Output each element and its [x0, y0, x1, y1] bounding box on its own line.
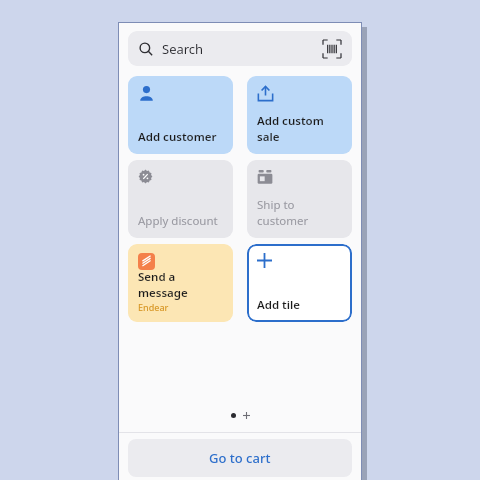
- button[interactable]: Add customer: [128, 76, 233, 154]
- staticText: Search: [162, 40, 204, 58]
- button[interactable]: Ship to customer: [247, 160, 352, 238]
- staticText: Ship to customer: [257, 197, 342, 229]
- staticText: Endear: [138, 301, 169, 313]
- button[interactable]: Send a message: [128, 244, 233, 322]
- button[interactable]: Scan barcode: [323, 40, 341, 58]
- button[interactable]: Search: [128, 31, 352, 66]
- staticText: Add custom sale: [257, 113, 342, 145]
- staticText: Send a message: [138, 269, 223, 301]
- button[interactable]: Add custom sale: [247, 76, 352, 154]
- staticText: Go to cart: [209, 449, 271, 467]
- button[interactable]: Apply discount: [128, 160, 233, 238]
- button[interactable]: Go to cart: [128, 439, 352, 477]
- staticText: Add tile: [257, 297, 301, 313]
- button[interactable]: Add tile: [247, 244, 352, 322]
- staticText: Add customer: [138, 129, 217, 145]
- staticText: Apply discount: [138, 213, 218, 229]
